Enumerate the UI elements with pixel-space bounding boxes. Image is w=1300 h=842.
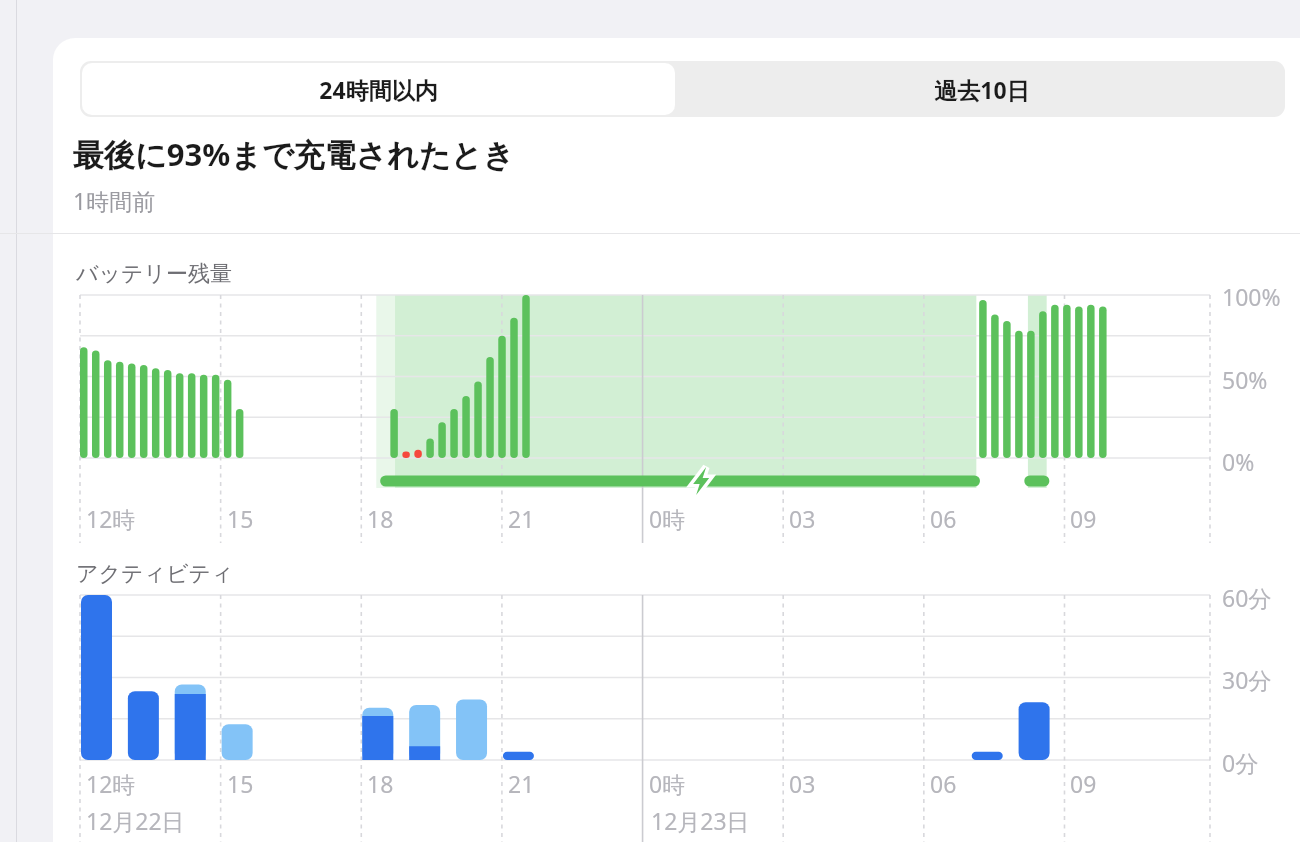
staticText: アクティビティ xyxy=(76,560,234,588)
button[interactable]: 過去10日 xyxy=(679,61,1285,117)
staticText: 100% xyxy=(1222,281,1281,312)
staticText: 0時 xyxy=(649,503,686,534)
staticText: 06 xyxy=(930,503,957,534)
staticText: 15 xyxy=(227,503,254,534)
staticText: 0% xyxy=(1222,446,1255,477)
staticText: 21 xyxy=(508,768,535,799)
staticText: 12月22日 xyxy=(86,805,185,836)
button[interactable]: 24時間以内 xyxy=(82,63,675,115)
staticText: 03 xyxy=(789,768,816,799)
staticText: 12時 xyxy=(86,503,136,534)
staticText: 60分 xyxy=(1222,582,1272,613)
staticText: 18 xyxy=(367,768,394,799)
staticText: 30分 xyxy=(1222,664,1272,695)
staticText: バッテリー残量 xyxy=(76,260,233,288)
staticText: 12時 xyxy=(86,768,136,799)
staticText: 18 xyxy=(367,503,394,534)
staticText: 0分 xyxy=(1222,747,1259,778)
staticText: 15 xyxy=(227,768,254,799)
staticText: 12月23日 xyxy=(651,805,750,836)
staticText: 0時 xyxy=(649,768,686,799)
staticText: 21 xyxy=(508,503,535,534)
staticText: 最後に93%まで充電されたとき xyxy=(73,133,515,175)
staticText: 09 xyxy=(1070,768,1097,799)
staticText: 06 xyxy=(930,768,957,799)
staticText: 24時間以内 xyxy=(319,74,438,105)
staticText: 09 xyxy=(1070,503,1097,534)
staticText: 50% xyxy=(1222,364,1268,395)
staticText: 1時間前 xyxy=(73,185,156,216)
staticText: 03 xyxy=(789,503,816,534)
staticText: 過去10日 xyxy=(934,74,1030,105)
